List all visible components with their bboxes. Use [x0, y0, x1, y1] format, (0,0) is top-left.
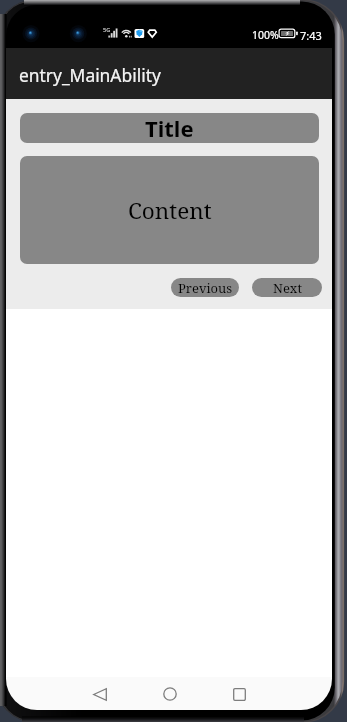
staticText: 7:43 [300, 28, 322, 43]
button[interactable]: Previous [171, 278, 239, 297]
staticText: Previous [178, 279, 233, 297]
button[interactable]: Title [20, 113, 319, 143]
staticText: Content [128, 195, 212, 226]
button[interactable]: Back [93, 688, 107, 701]
button[interactable]: Content [20, 156, 319, 264]
staticText: 100% [252, 28, 279, 42]
staticText: Next [273, 279, 302, 297]
button[interactable]: Home [163, 687, 177, 701]
staticText: Title [145, 113, 194, 143]
button[interactable]: Recents [233, 688, 246, 701]
staticText: 5G [103, 26, 111, 34]
staticText: entry_MainAbility [19, 63, 161, 87]
button[interactable]: Next [252, 278, 322, 297]
